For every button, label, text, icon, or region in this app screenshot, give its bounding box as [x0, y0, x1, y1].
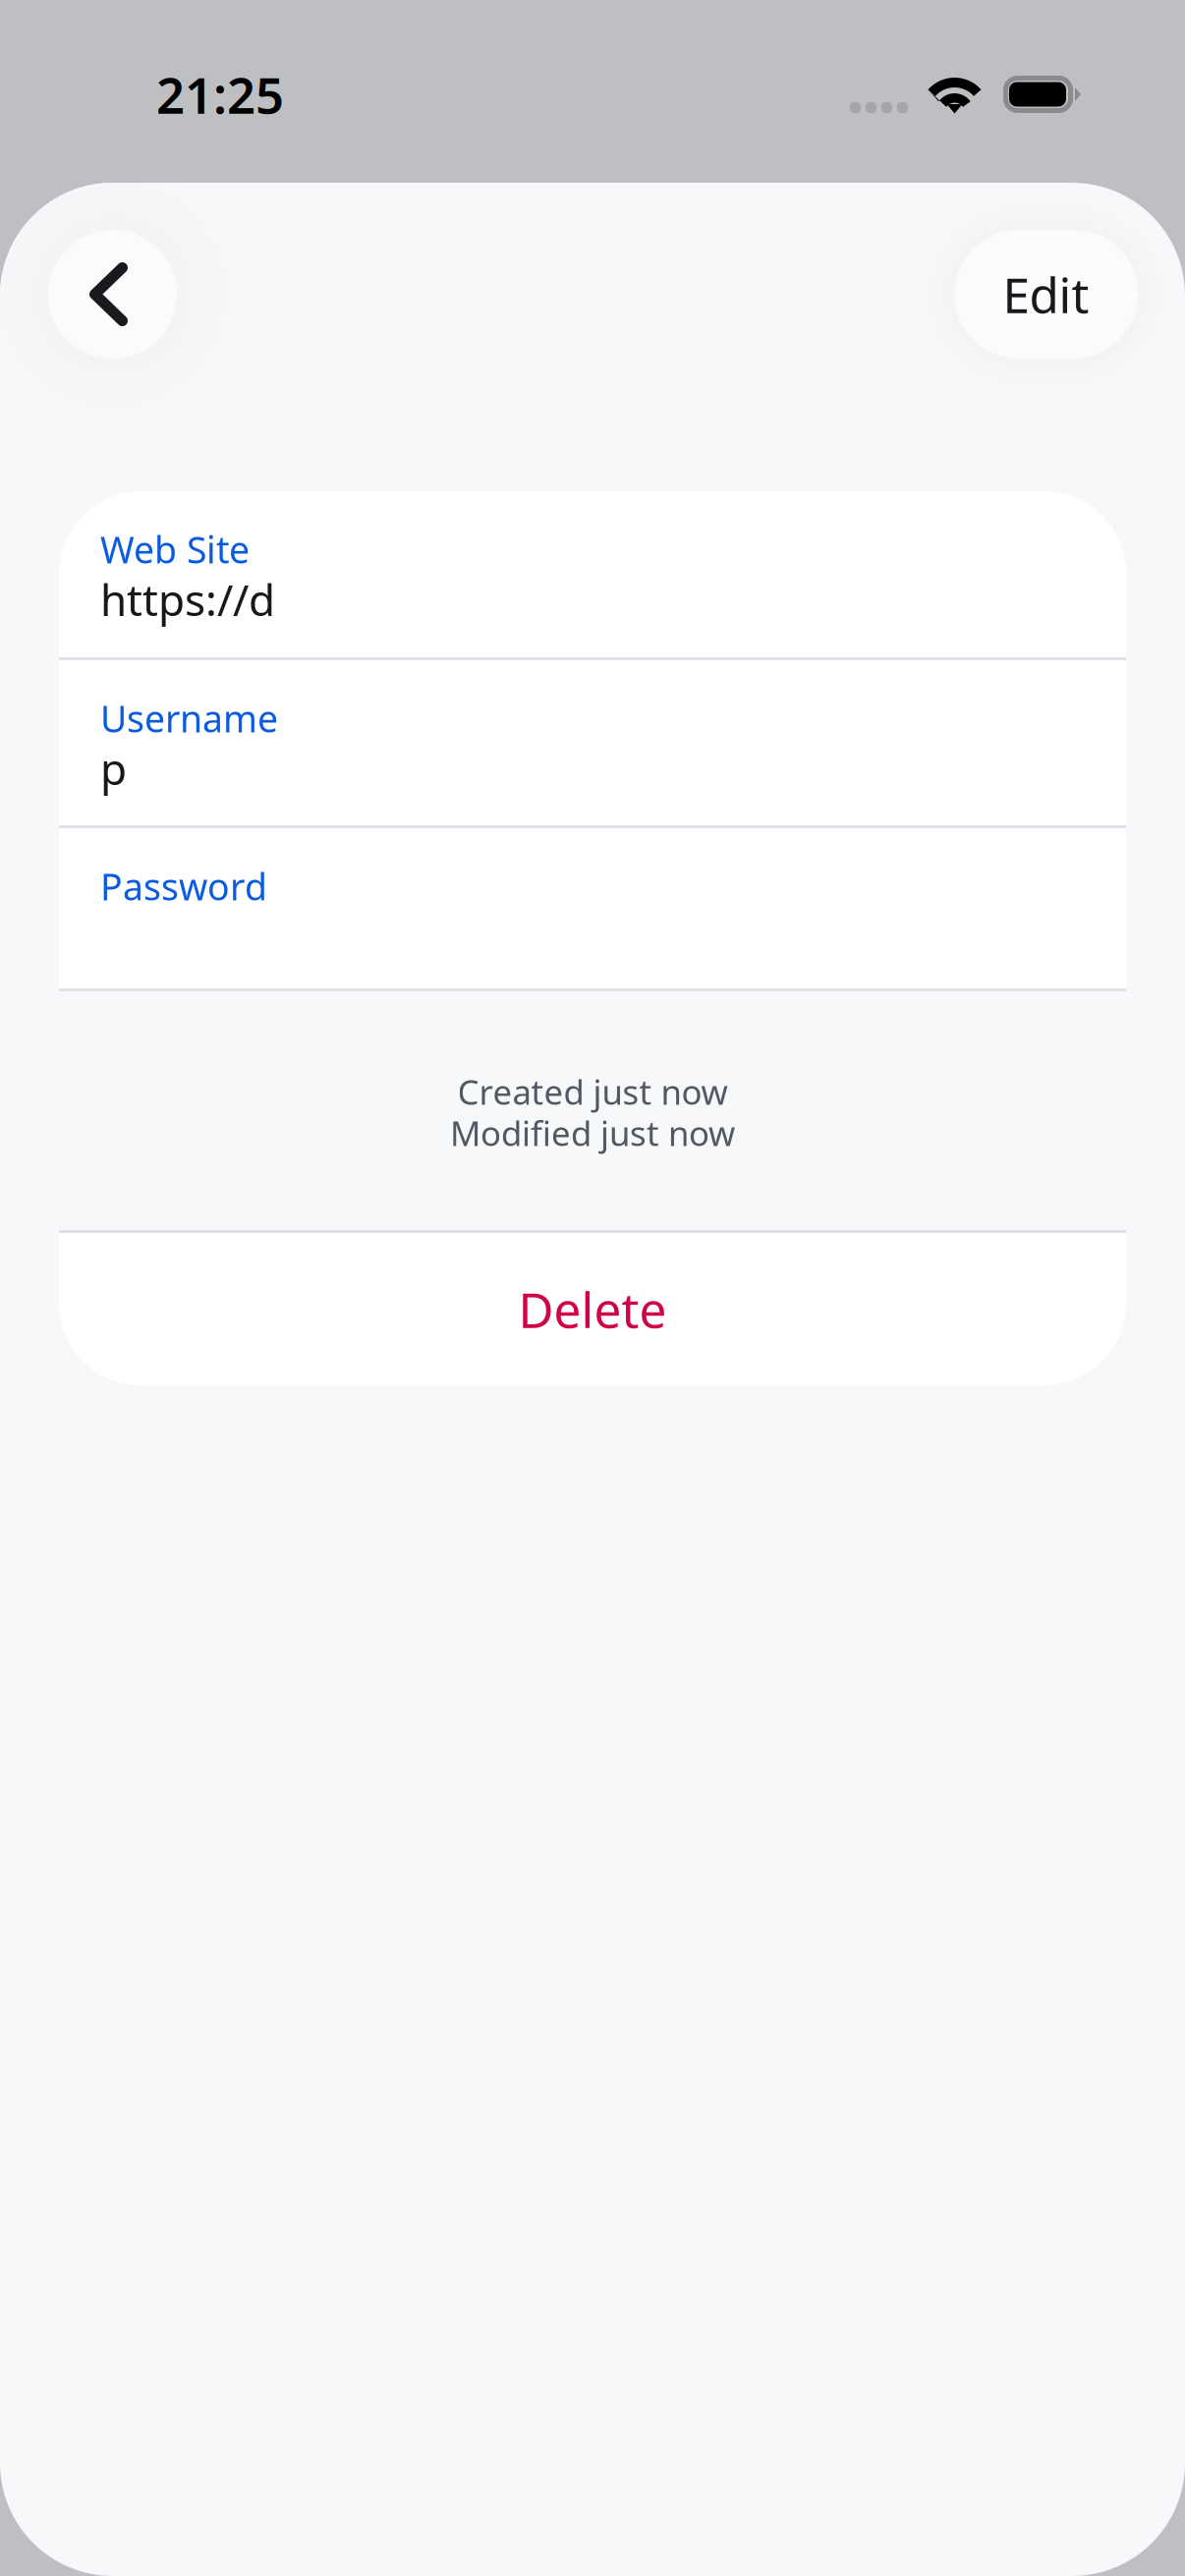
- staticText: Delete: [518, 1277, 667, 1341]
- button[interactable]: Username: [59, 660, 1126, 825]
- button[interactable]: Edit: [954, 230, 1138, 359]
- staticText: Password: [100, 862, 267, 911]
- staticText: Web Site: [100, 525, 250, 574]
- button[interactable]: Back: [48, 230, 177, 359]
- staticText: Username: [100, 694, 278, 743]
- staticText: p: [100, 740, 127, 797]
- staticText: 21:25: [156, 61, 284, 127]
- staticText: Modified just now: [450, 1110, 735, 1155]
- staticText: Edit: [1003, 262, 1089, 326]
- button[interactable]: Password: [59, 828, 1126, 988]
- staticText: https://d: [100, 571, 275, 628]
- staticText: Created just now: [457, 1069, 728, 1114]
- button[interactable]: Delete: [59, 1233, 1126, 1385]
- button[interactable]: Web Site: [59, 491, 1126, 657]
